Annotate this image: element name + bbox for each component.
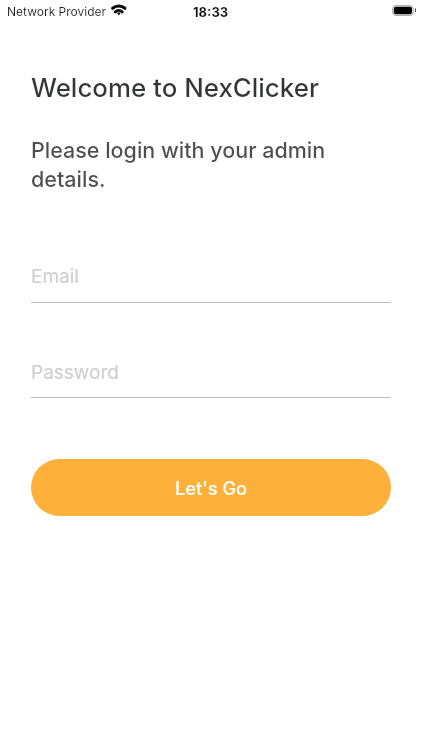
staticText: Network Provider [7,4,107,19]
staticText: Password [31,361,119,384]
other: Battery full [392,5,417,16]
other: Wi-Fi signal [111,4,127,16]
button[interactable]: Password [31,345,391,411]
staticText: 18:33 [193,4,229,20]
staticText: Welcome to NexClicker [31,72,319,103]
button[interactable]: Email [31,249,391,316]
staticText: Please login with your admin details. [31,137,391,193]
button[interactable]: Let's Go [31,459,391,516]
staticText: Let's Go [175,477,248,499]
staticText: Email [31,265,79,288]
